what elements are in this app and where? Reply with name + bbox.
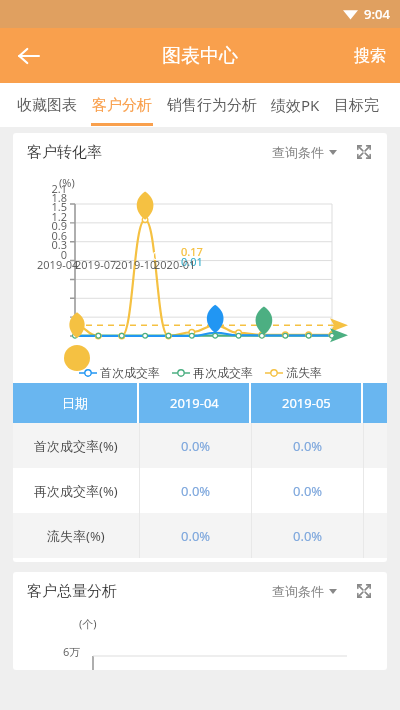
staticText: (个) xyxy=(79,616,97,631)
button[interactable]: Expand xyxy=(353,580,375,602)
staticText: 收藏图表 xyxy=(17,96,77,115)
staticText: 首次成交率 xyxy=(100,365,160,380)
staticText: 销售行为分析 xyxy=(167,96,257,115)
staticText: 1.5 xyxy=(39,199,67,214)
staticText: 0.01 xyxy=(144,249,164,263)
staticText: 0.0% xyxy=(181,527,211,545)
staticText: 0.3 xyxy=(39,237,67,252)
staticText: 0.05 xyxy=(114,249,134,263)
staticText: 日期 xyxy=(62,395,88,411)
button[interactable]: 查询条件 xyxy=(270,579,339,603)
staticText: 再次成交率 xyxy=(193,365,253,380)
button[interactable]: 2019-04 xyxy=(139,383,249,423)
button[interactable]: 首次成交率 xyxy=(79,365,160,380)
staticText: 2019-04 xyxy=(37,257,79,272)
staticText: 1.2 xyxy=(39,209,67,224)
staticText: (%) xyxy=(59,175,75,190)
staticText: 绩效PK xyxy=(271,95,320,115)
staticText: 0.9 xyxy=(39,218,67,233)
staticText: 2019-10 xyxy=(115,257,157,272)
button[interactable]: 搜索 xyxy=(340,34,400,78)
staticText: 搜索 xyxy=(354,46,386,66)
staticText: 1.8 xyxy=(39,190,67,205)
button[interactable]: 再次成交率 xyxy=(172,365,253,380)
staticText: 2019-04 xyxy=(170,394,219,412)
button[interactable]: 查询条件 xyxy=(270,140,339,164)
button[interactable]: 流失率 xyxy=(265,365,322,380)
staticText: 0.0% xyxy=(293,482,323,500)
staticText: 流失率 xyxy=(286,365,322,380)
staticText: 2.1 xyxy=(39,181,67,196)
button[interactable]: 绩效PK xyxy=(264,83,327,127)
staticText: 客户总量分析 xyxy=(27,582,117,601)
button[interactable]: 目标完 xyxy=(327,83,386,127)
staticText: 客户转化率 xyxy=(27,143,102,162)
staticText: 1.85 xyxy=(73,183,93,197)
staticText: 6万 xyxy=(63,644,81,659)
staticText: 2019-07 xyxy=(75,257,117,272)
button[interactable]: 2019-05 xyxy=(251,383,361,423)
staticText: 2020-01 xyxy=(154,257,196,272)
button[interactable]: Expand xyxy=(353,141,375,163)
staticText: 图表中心 xyxy=(162,44,238,68)
button[interactable]: 客户分析 xyxy=(84,83,160,127)
staticText: 0.17 xyxy=(181,244,203,259)
staticText: 首次成交率(%) xyxy=(34,437,118,455)
staticText: 再次成交率(%) xyxy=(34,482,118,500)
staticText: 查询条件 xyxy=(272,583,324,599)
button[interactable]: Back xyxy=(6,33,52,79)
staticText: 0.0% xyxy=(293,437,323,455)
staticText: 0 xyxy=(39,247,67,262)
button[interactable]: 销售行为分析 xyxy=(160,83,264,127)
staticText: 流失率(%) xyxy=(47,527,105,545)
staticText: 2019-05 xyxy=(282,394,331,412)
staticText: 目标完 xyxy=(334,96,379,115)
staticText: 0.0% xyxy=(293,527,323,545)
staticText: 客户分析 xyxy=(92,96,152,115)
staticText: 0.01 xyxy=(181,254,203,269)
staticText: 9:04 xyxy=(364,5,390,23)
staticText: 0.6 xyxy=(39,228,67,243)
button[interactable]: 收藏图表 xyxy=(10,83,84,127)
button[interactable]: 日期 xyxy=(13,383,137,423)
staticText: 查询条件 xyxy=(272,144,324,160)
staticText: 0.0% xyxy=(181,482,211,500)
staticText: 0.0% xyxy=(181,437,211,455)
